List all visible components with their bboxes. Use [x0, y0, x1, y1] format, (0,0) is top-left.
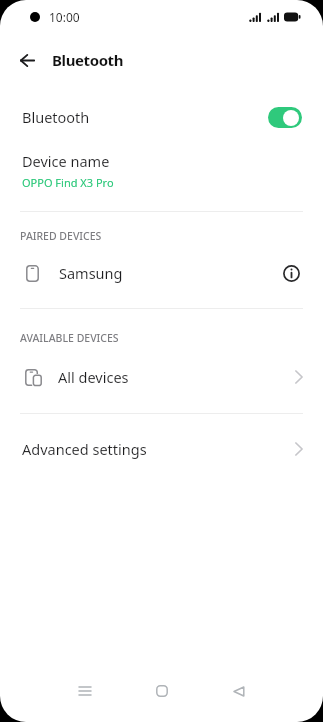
button[interactable] [219, 671, 259, 711]
button[interactable]: Advanced settings [0, 414, 323, 484]
staticText: Device name [22, 151, 110, 171]
button[interactable]: Samsung [0, 259, 323, 287]
staticText: Samsung [59, 263, 123, 283]
button[interactable] [142, 671, 182, 711]
staticText: All devices [58, 367, 129, 387]
button[interactable]: Bluetooth [0, 86, 323, 148]
button[interactable] [277, 259, 305, 287]
button[interactable]: Device name [0, 148, 323, 190]
staticText: 10:00 [49, 9, 80, 25]
staticText: AVAILABLE DEVICES [20, 331, 119, 345]
button[interactable] [65, 671, 105, 711]
staticText: OPPO Find X3 Pro [22, 175, 114, 190]
staticText: Bluetooth [22, 107, 90, 127]
button[interactable] [268, 107, 302, 128]
button[interactable] [20, 44, 52, 76]
button[interactable]: All devices [0, 367, 323, 387]
staticText: PAIRED DEVICES [20, 229, 102, 243]
staticText: Bluetooth [52, 50, 124, 70]
staticText: Advanced settings [22, 439, 147, 459]
